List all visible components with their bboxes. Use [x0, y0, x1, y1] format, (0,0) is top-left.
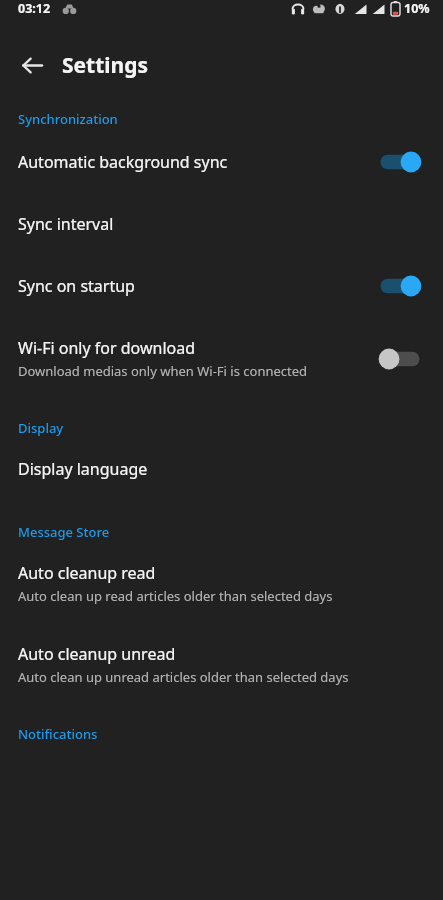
staticText: 03:12: [18, 0, 51, 17]
staticText: Auto cleanup unread: [18, 643, 176, 665]
button[interactable]: Toggle off: [375, 346, 425, 372]
staticText: Display language: [18, 458, 148, 480]
button[interactable]: Toggle on: [375, 273, 425, 299]
staticText: Display: [18, 419, 64, 437]
button[interactable]: Toggle on: [375, 149, 425, 175]
staticText: Sync on startup: [18, 275, 135, 297]
button[interactable]: Auto cleanup read: [0, 543, 443, 624]
staticText: 10%: [404, 0, 430, 17]
staticText: Download medias only when Wi-Fi is conne…: [18, 362, 308, 380]
button[interactable]: Wi-Fi only for download: [0, 318, 443, 399]
button[interactable]: Display language: [0, 439, 443, 499]
staticText: Auto cleanup read: [18, 562, 156, 584]
button[interactable]: Automatic background sync: [0, 130, 443, 194]
button[interactable]: Back: [12, 45, 52, 85]
staticText: Auto clean up read articles older than s…: [18, 587, 333, 605]
staticText: Notifications: [18, 725, 98, 743]
staticText: Wi-Fi only for download: [18, 337, 196, 359]
staticText: Automatic background sync: [18, 151, 228, 173]
staticText: Message Store: [18, 523, 110, 541]
button[interactable]: Sync interval: [0, 194, 443, 254]
button[interactable]: Auto cleanup unread: [0, 624, 443, 705]
staticText: Settings: [62, 51, 149, 80]
staticText: Synchronization: [18, 110, 118, 128]
staticText: Sync interval: [18, 213, 114, 235]
staticText: Auto clean up unread articles older than…: [18, 668, 349, 686]
button[interactable]: Sync on startup: [0, 254, 443, 318]
